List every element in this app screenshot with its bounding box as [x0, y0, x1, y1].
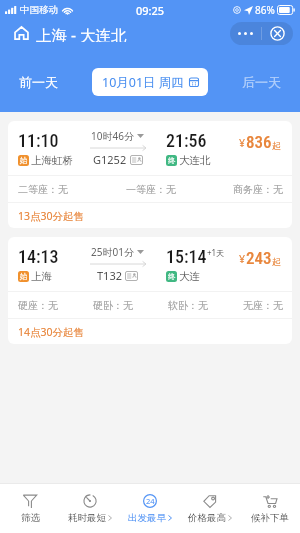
button[interactable]: 10月01日 周四: [92, 68, 208, 96]
button[interactable]: Close: [262, 22, 293, 45]
staticText: 13点30分起售: [18, 209, 85, 223]
staticText: 软卧：无: [168, 299, 208, 312]
staticText: 中国移动: [20, 4, 58, 16]
staticText: 15:14: [166, 246, 207, 267]
button[interactable]: 前一天: [0, 69, 68, 95]
staticText: 大连: [179, 270, 200, 283]
button[interactable]: 上海 - 大连北: [0, 20, 133, 46]
staticText: 起: [272, 140, 281, 151]
button[interactable]: More options: [230, 22, 261, 45]
staticText: 21:56: [166, 130, 207, 151]
staticText: 价格最高: [188, 512, 226, 524]
staticText: 14点30分起售: [18, 325, 85, 339]
staticText: 始: [20, 156, 28, 165]
staticText: ¥: [239, 252, 246, 266]
button[interactable]: 24: [120, 484, 180, 533]
staticText: 硬卧：无: [93, 299, 133, 312]
staticText: 候补下单: [251, 512, 289, 524]
staticText: T132: [97, 268, 122, 283]
staticText: 243: [246, 248, 272, 268]
button[interactable]: 筛选: [0, 484, 60, 533]
staticText: 终: [168, 272, 176, 281]
staticText: ¥: [239, 136, 246, 150]
staticText: 起: [272, 256, 281, 267]
staticText: 上海 - 大连北: [36, 24, 127, 42]
staticText: 836: [246, 132, 272, 152]
staticText: 86%: [255, 3, 275, 17]
staticText: 大连北: [179, 154, 211, 167]
staticText: 二等座：无: [18, 183, 68, 196]
button[interactable]: 14:13: [8, 237, 292, 344]
staticText: 10月01日 周四: [102, 74, 184, 91]
button[interactable]: 耗时最短: [60, 484, 120, 533]
staticText: 上海: [31, 270, 52, 283]
staticText: 上海虹桥: [31, 154, 73, 167]
staticText: 无座：无: [243, 299, 283, 312]
staticText: 25时01分: [91, 245, 134, 259]
staticText: G1252: [93, 152, 127, 167]
staticText: +1天: [207, 247, 225, 258]
staticText: 09:25: [136, 3, 165, 18]
staticText: 出发最早: [128, 512, 166, 524]
staticText: 始: [20, 272, 28, 281]
button[interactable]: 价格最高: [180, 484, 240, 533]
button[interactable]: 候补下单: [240, 484, 300, 533]
button[interactable]: 后一天: [232, 69, 300, 95]
staticText: 一等座：无: [126, 183, 176, 196]
staticText: 筛选: [21, 512, 40, 524]
staticText: 24: [146, 496, 155, 506]
staticText: 硬座：无: [18, 299, 58, 312]
staticText: 商务座：无: [233, 183, 283, 196]
staticText: 终: [168, 156, 176, 165]
button[interactable]: 11:10: [8, 121, 292, 228]
staticText: 耗时最短: [68, 512, 106, 524]
staticText: 10时46分: [91, 129, 134, 143]
staticText: 11:10: [18, 130, 59, 151]
staticText: 14:13: [18, 246, 59, 267]
